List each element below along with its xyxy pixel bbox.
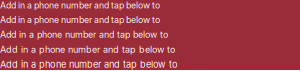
staticText: Add in a phone number and tap below to: [0, 0, 160, 10]
staticText: Add in a phone number and tap below to: [0, 29, 168, 40]
staticText: Add in a phone number and tap below to: [0, 14, 160, 25]
staticText: Add in a phone number and tap below to: [0, 59, 178, 70]
staticText: Add in a phone number and tap below to: [0, 44, 175, 55]
